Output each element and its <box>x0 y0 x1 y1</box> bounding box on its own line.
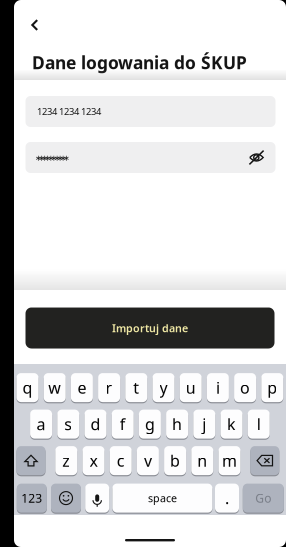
button[interactable]: i <box>207 372 229 403</box>
button[interactable]: z <box>55 445 77 476</box>
staticText: ∗ <box>63 153 70 163</box>
button[interactable]: w <box>44 372 66 403</box>
staticText: v <box>144 450 152 471</box>
button[interactable]: g <box>139 409 161 439</box>
staticText: ∗ <box>38 153 45 163</box>
staticText: j <box>202 413 206 435</box>
staticText: ∗ <box>50 153 57 163</box>
staticText: t <box>133 377 139 398</box>
staticText: u <box>186 377 196 398</box>
button[interactable]: Show password <box>243 144 269 170</box>
button[interactable]: c <box>110 445 132 476</box>
staticText: z <box>62 450 70 471</box>
staticText: ∗ <box>60 153 67 163</box>
button[interactable]: t <box>125 372 147 403</box>
staticText: ∗ <box>41 153 48 163</box>
staticText: p <box>267 377 277 398</box>
button[interactable]: j <box>193 409 215 439</box>
button[interactable]: Importuj dane <box>25 307 274 348</box>
button[interactable]: q <box>16 372 38 403</box>
staticText: ∗ <box>44 153 51 163</box>
staticText: Go <box>255 490 271 506</box>
button[interactable]: h <box>166 409 188 439</box>
button[interactable]: e <box>71 372 93 403</box>
button[interactable]: Back <box>28 11 58 39</box>
staticText: r <box>106 377 113 398</box>
button[interactable]: d <box>84 409 106 439</box>
staticText: i <box>216 377 220 398</box>
staticText: a <box>37 413 46 435</box>
button[interactable]: Delete <box>250 445 279 476</box>
button[interactable]: space <box>112 483 212 513</box>
button[interactable]: Shift <box>16 445 45 476</box>
staticText: d <box>90 413 100 435</box>
staticText: space <box>148 491 177 505</box>
button[interactable]: p <box>261 372 283 403</box>
staticText: h <box>172 413 182 435</box>
staticText: l <box>257 413 261 435</box>
staticText: o <box>240 377 250 398</box>
staticText: b <box>170 450 180 471</box>
staticText: k <box>227 413 236 435</box>
button[interactable]: s <box>57 409 79 439</box>
staticText: Importuj dane <box>112 321 188 335</box>
button[interactable]: k <box>220 409 242 439</box>
staticText: e <box>77 377 86 398</box>
button[interactable]: f <box>112 409 134 439</box>
button[interactable]: Go <box>243 483 284 513</box>
button[interactable]: y <box>152 372 174 403</box>
button[interactable]: r <box>98 372 120 403</box>
staticText: ∗ <box>57 153 64 163</box>
staticText: s <box>64 413 72 435</box>
staticText: q <box>22 377 32 398</box>
staticText: 1234 1234 1234 <box>37 105 101 118</box>
staticText: . <box>225 487 229 509</box>
staticText: g <box>145 413 155 435</box>
staticText: Dane logowania do ŚKUP <box>32 51 247 74</box>
button[interactable]: 123 <box>17 483 47 513</box>
button[interactable]: n <box>191 445 213 476</box>
staticText: m <box>222 450 237 471</box>
button[interactable]: a <box>30 409 52 439</box>
staticText: ∗ <box>54 153 61 163</box>
staticText: x <box>89 450 97 471</box>
staticText: n <box>197 450 207 471</box>
button[interactable]: x <box>82 445 104 476</box>
button[interactable]: u <box>180 372 202 403</box>
button[interactable]: m <box>218 445 240 476</box>
staticText: ∗ <box>47 153 54 163</box>
staticText: y <box>159 377 167 398</box>
button[interactable]: b <box>164 445 186 476</box>
staticText: c <box>117 450 125 471</box>
button[interactable]: l <box>248 409 270 439</box>
staticText: ∗ <box>35 153 42 163</box>
staticText: 123 <box>21 490 42 506</box>
staticText: f <box>120 413 126 435</box>
button[interactable]: Dictation <box>85 483 109 513</box>
staticText: w <box>48 377 61 398</box>
button[interactable]: . <box>215 483 239 513</box>
button[interactable]: Emoji <box>51 483 81 513</box>
button[interactable]: o <box>234 372 256 403</box>
button[interactable]: v <box>137 445 159 476</box>
